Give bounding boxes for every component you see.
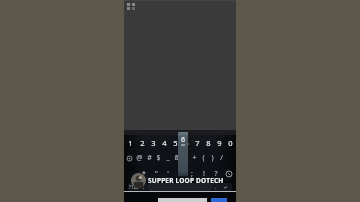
staticText: " xyxy=(155,169,158,179)
staticText: + xyxy=(192,153,197,163)
button[interactable]: ' xyxy=(162,166,174,181)
button[interactable]: 1 xyxy=(124,135,136,150)
button[interactable]: Backspace xyxy=(222,166,236,181)
button[interactable]: 6 xyxy=(181,135,192,150)
button[interactable]: 3 xyxy=(148,135,159,150)
staticText: ; xyxy=(191,169,193,179)
staticText: . xyxy=(215,184,217,190)
button[interactable]: @ xyxy=(134,150,144,166)
staticText: 2 xyxy=(140,138,145,148)
button[interactable]: ! xyxy=(198,166,210,181)
button[interactable]: $ xyxy=(154,150,163,166)
button[interactable]: + xyxy=(190,150,199,166)
button[interactable]: ; xyxy=(186,166,198,181)
button[interactable]: ) xyxy=(208,150,217,166)
button[interactable]: ? xyxy=(210,166,222,181)
button[interactable]: & xyxy=(172,150,181,166)
staticText: 4 xyxy=(162,138,167,148)
staticText: 6 xyxy=(181,135,186,145)
button[interactable]: , xyxy=(140,183,148,191)
button[interactable]: ?123 xyxy=(128,183,140,191)
button[interactable]: 2 xyxy=(136,135,148,150)
staticText: ! xyxy=(203,169,205,179)
button[interactable]: 4 xyxy=(159,135,170,150)
button[interactable]: 8 xyxy=(203,135,214,150)
staticText: ' xyxy=(167,169,169,179)
staticText: 0 xyxy=(228,138,233,148)
staticText: ) xyxy=(211,153,214,163)
staticText: * xyxy=(142,169,146,179)
button[interactable]: ↵ xyxy=(220,183,232,191)
staticText: ( xyxy=(202,153,205,163)
staticText: 1 xyxy=(128,138,133,148)
button[interactable]: 9 xyxy=(214,135,225,150)
staticText: 9 xyxy=(217,138,222,148)
staticText: / xyxy=(220,153,223,163)
button[interactable]: Channel avatar xyxy=(131,173,146,188)
staticText: SUPPER LOOP DOTECH xyxy=(148,176,224,185)
staticText: @ xyxy=(136,153,143,163)
button[interactable]: : xyxy=(174,166,186,181)
button[interactable]: 0 xyxy=(225,135,236,150)
button[interactable]: Shift xyxy=(124,166,138,181)
button[interactable]: _ xyxy=(163,150,172,166)
staticText: & xyxy=(174,153,180,163)
button[interactable]: 5 xyxy=(170,135,181,150)
staticText: $ xyxy=(156,153,161,163)
button[interactable]: Menu xyxy=(127,3,135,10)
staticText: ?123 xyxy=(129,184,139,190)
staticText: 3 xyxy=(151,138,156,148)
button[interactable]: ( xyxy=(199,150,208,166)
button[interactable]: # xyxy=(144,150,154,166)
staticText: ? xyxy=(214,169,218,179)
staticText: _ xyxy=(166,153,170,163)
button[interactable]: * xyxy=(138,166,150,181)
staticText: , xyxy=(143,184,145,190)
staticText: : xyxy=(179,169,181,179)
button[interactable]: - xyxy=(181,150,190,166)
button[interactable]: Symbols xyxy=(124,150,134,166)
button[interactable]: / xyxy=(217,150,226,166)
staticText: # xyxy=(147,153,152,163)
staticText: 6 xyxy=(184,138,189,148)
button[interactable]: . xyxy=(212,183,220,191)
staticText: 5 xyxy=(173,138,178,148)
staticText: ↵ xyxy=(224,185,228,190)
button[interactable]: 7 xyxy=(192,135,203,150)
staticText: 8 xyxy=(206,138,211,148)
staticText: 7 xyxy=(195,138,200,148)
button[interactable]: " xyxy=(150,166,162,181)
